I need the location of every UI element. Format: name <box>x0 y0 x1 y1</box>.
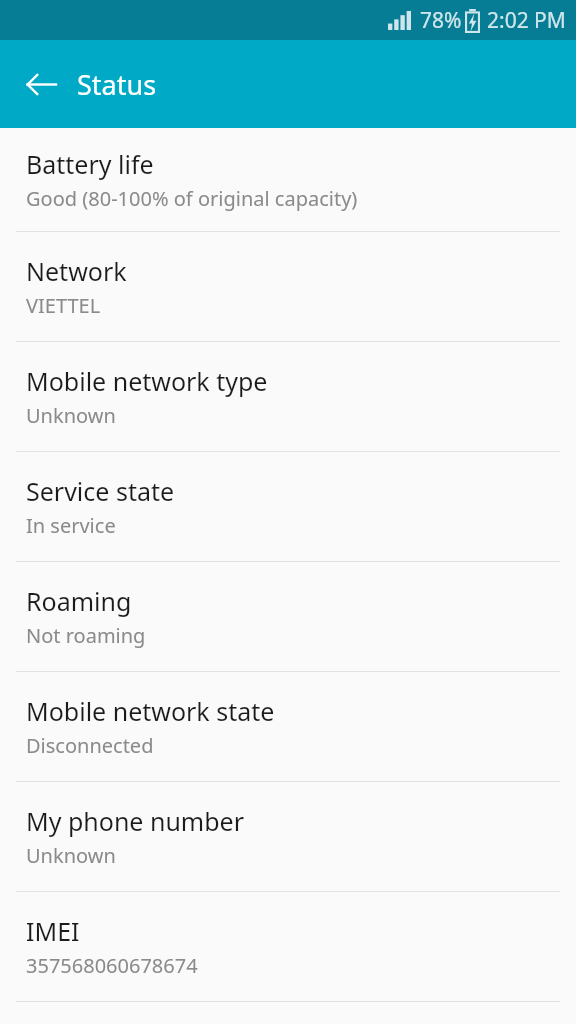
staticText: Service state <box>26 474 175 508</box>
staticText: Good (80-100% of original capacity) <box>26 185 358 212</box>
staticText: 2:02 PM <box>487 6 566 35</box>
staticText: Network <box>26 254 127 288</box>
staticText: Unknown <box>26 402 116 429</box>
staticText: 357568060678674 <box>26 952 198 979</box>
button[interactable]: Roaming <box>0 562 576 671</box>
staticText: Roaming <box>26 584 132 618</box>
button[interactable]: Mobile network state <box>0 672 576 781</box>
staticText: In service <box>26 512 116 539</box>
button[interactable]: Back <box>13 56 69 112</box>
staticText: My phone number <box>26 804 245 838</box>
button[interactable]: My phone number <box>0 782 576 891</box>
button[interactable]: IMEI <box>0 892 576 1001</box>
staticText: 78% <box>420 6 462 35</box>
button[interactable]: Battery life <box>0 128 576 231</box>
staticText: Unknown <box>26 842 116 869</box>
staticText: IMEI <box>26 914 80 948</box>
button[interactable]: Network <box>0 232 576 341</box>
staticText: Status <box>77 66 157 103</box>
staticText: Not roaming <box>26 622 146 649</box>
staticText: Mobile network state <box>26 694 275 728</box>
button[interactable]: Mobile network type <box>0 342 576 451</box>
staticText: Disconnected <box>26 732 154 759</box>
staticText: Mobile network type <box>26 364 268 398</box>
staticText: Battery life <box>26 147 154 181</box>
staticText: VIETTEL <box>26 292 101 319</box>
button[interactable]: Service state <box>0 452 576 561</box>
